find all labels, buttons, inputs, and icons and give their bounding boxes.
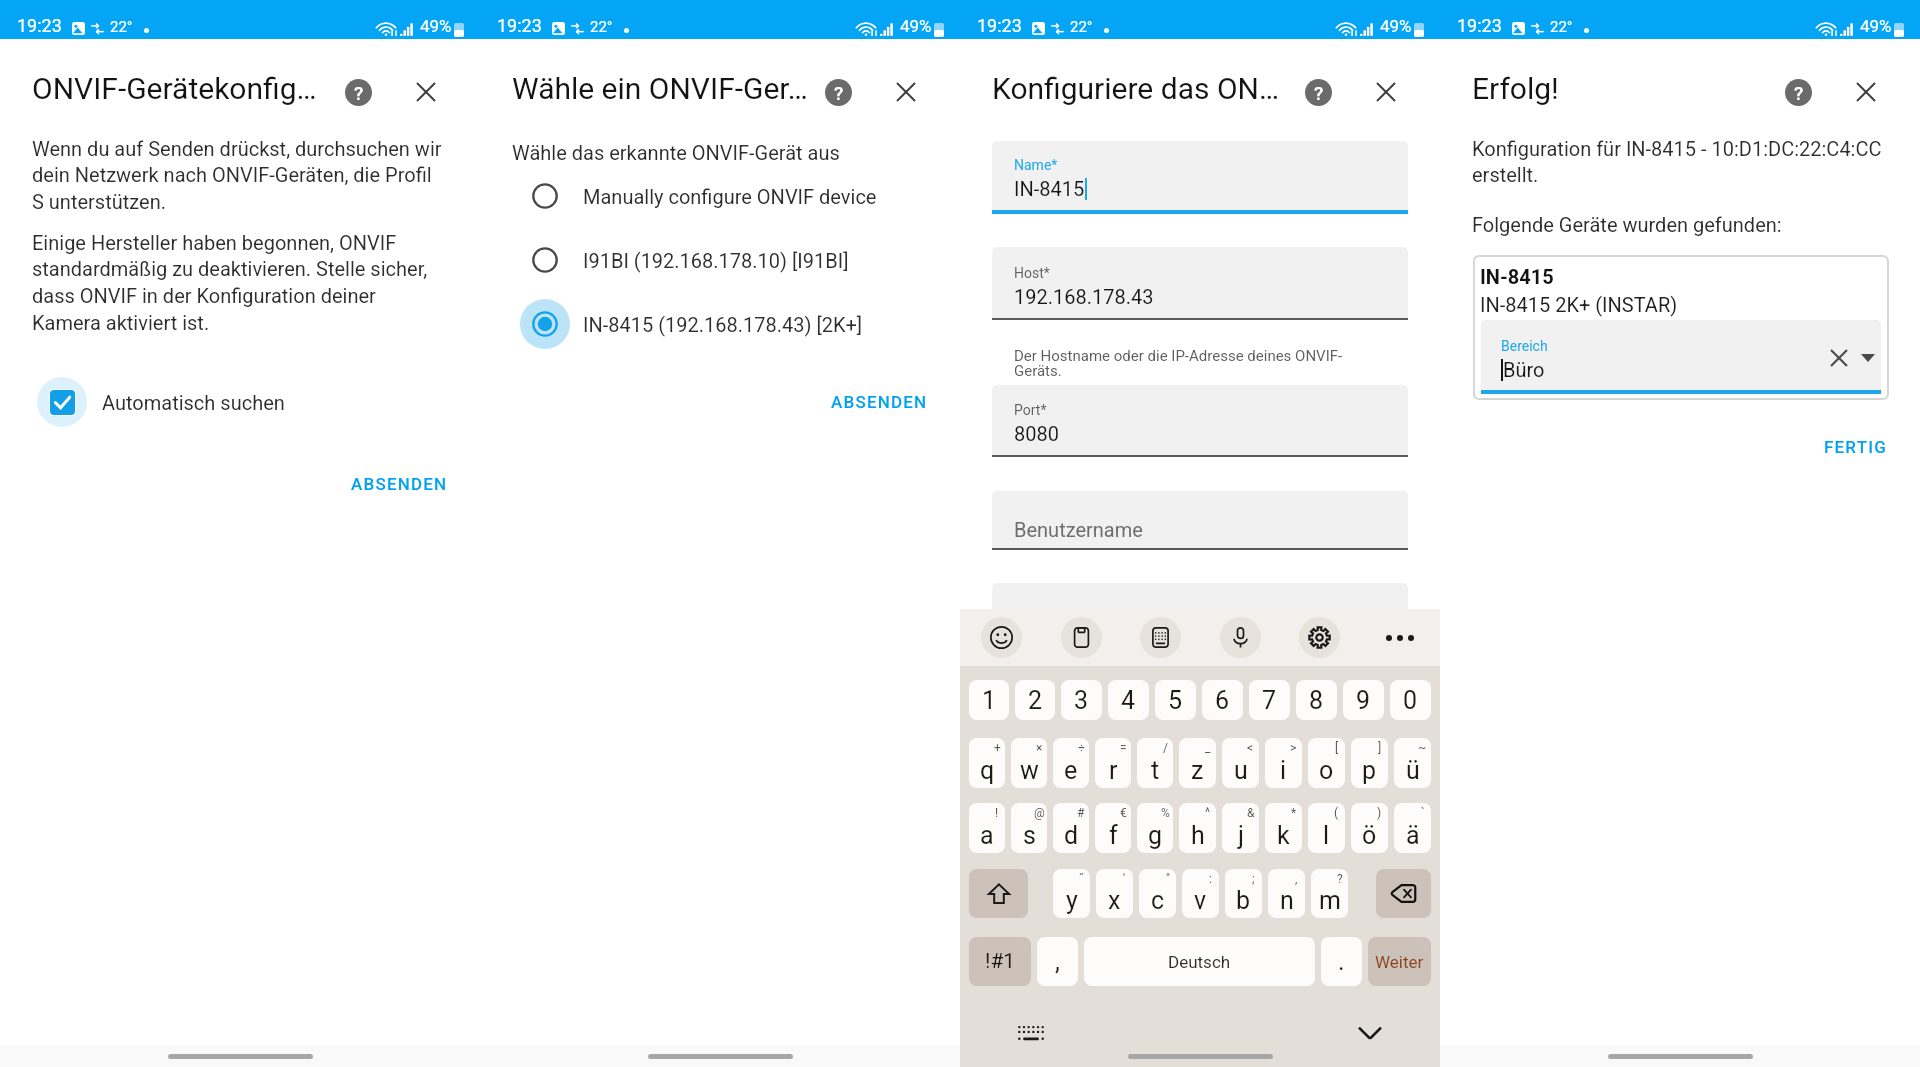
staticText: % [1161, 806, 1170, 820]
button[interactable]: * [1265, 803, 1302, 853]
staticText: 7 [1262, 686, 1277, 715]
button[interactable]: 1 [969, 680, 1009, 720]
button[interactable]: : [1182, 869, 1219, 918]
button[interactable]: Hilfe [817, 71, 859, 113]
button[interactable]: × [1011, 738, 1047, 788]
staticText: q [980, 756, 995, 785]
button[interactable]: Tastatur ausblenden [1357, 1020, 1383, 1046]
button[interactable]: 5 [1155, 680, 1196, 720]
button[interactable]: Name* [992, 141, 1408, 210]
button[interactable]: Tastatureinstellungen [1299, 617, 1340, 658]
button[interactable]: Host* [992, 247, 1408, 318]
staticText: 19:23 [497, 15, 542, 36]
button[interactable]: ( [1308, 803, 1345, 853]
button[interactable]: 4 [1108, 680, 1149, 720]
button[interactable]: ÷ [1053, 738, 1089, 788]
button[interactable]: Umschalt [969, 869, 1028, 918]
staticText: Port* [1014, 402, 1047, 418]
button[interactable]: 2 [1015, 680, 1055, 720]
button[interactable]: + [969, 738, 1005, 788]
button[interactable]: @ [1011, 803, 1047, 853]
button[interactable]: ; [1225, 869, 1262, 918]
staticText: !#1 [985, 949, 1016, 974]
button[interactable]: Emoji [981, 617, 1022, 658]
button[interactable]: Bereich [1481, 320, 1881, 390]
button[interactable]: # [1053, 803, 1089, 853]
button[interactable]: ABSENDEN [799, 382, 960, 422]
button[interactable]: ! [969, 803, 1005, 853]
staticText: 49% [1860, 16, 1892, 36]
button[interactable]: > [1265, 738, 1302, 788]
button[interactable]: ˝ [1053, 869, 1090, 918]
button[interactable]: 7 [1249, 680, 1290, 720]
button[interactable]: ` [1394, 803, 1431, 853]
button[interactable]: ) [1351, 803, 1388, 853]
button[interactable]: 8 [1296, 680, 1337, 720]
staticText: IN-8415 2K+ (INSTAR) [1480, 293, 1678, 316]
staticText: 49% [900, 16, 932, 36]
button[interactable]: IN-8415 (192.168.178.43) [2K+] [480, 292, 960, 356]
staticText: r [1109, 756, 1118, 785]
button[interactable]: Eingabe löschen [1824, 343, 1854, 373]
button[interactable]: ] [1351, 738, 1388, 788]
button[interactable]: 6 [1202, 680, 1243, 720]
button[interactable]: [ [1308, 738, 1345, 788]
button[interactable]: Hilfe [337, 71, 379, 113]
staticText: p [1362, 756, 1377, 785]
staticText: ONVIF-Gerätekonfig… [32, 71, 317, 106]
staticText: Host* [1014, 265, 1050, 281]
button[interactable]: " [1139, 869, 1176, 918]
staticText: 5 [1168, 686, 1183, 715]
button[interactable]: Löschen [1376, 869, 1431, 918]
staticText: ö [1362, 821, 1377, 850]
button[interactable]: Weiter [1368, 937, 1431, 986]
button[interactable]: I91BI (192.168.178.10) [I91BI] [480, 228, 960, 292]
staticText: 19:23 [17, 15, 62, 36]
button[interactable]: € [1095, 803, 1131, 853]
button[interactable]: Zwischenablage [1061, 617, 1102, 658]
button[interactable]: Spracheingabe [1220, 617, 1261, 658]
button[interactable]: Tastatur wechseln [1018, 1020, 1044, 1046]
button[interactable]: Schließen [405, 71, 447, 113]
button[interactable]: Schließen [1365, 71, 1407, 113]
staticText: ÷ [1078, 741, 1085, 755]
button[interactable]: Port* [992, 385, 1408, 455]
button[interactable]: Manually configure ONVIF device [480, 164, 960, 228]
staticText: ˝ [1079, 872, 1084, 886]
staticText: . [1338, 947, 1345, 976]
staticText: Bereich [1501, 338, 1548, 354]
button[interactable]: _ [1179, 738, 1216, 788]
button[interactable]: Schließen [885, 71, 927, 113]
staticText: w [1020, 756, 1039, 785]
button[interactable]: ~ [1394, 738, 1431, 788]
button[interactable]: Automatisch suchen [0, 377, 480, 427]
button[interactable]: % [1137, 803, 1173, 853]
button[interactable]: 9 [1343, 680, 1384, 720]
button[interactable]: , [1268, 869, 1305, 918]
button[interactable]: Hilfe [1297, 71, 1339, 113]
button[interactable]: !#1 [969, 937, 1031, 986]
button[interactable]: Benutzername [992, 491, 1408, 548]
button[interactable]: < [1222, 738, 1259, 788]
staticText: Weiter [1375, 952, 1424, 972]
button[interactable]: FERTIG [1792, 427, 1920, 467]
button[interactable]: , [1037, 937, 1078, 986]
staticText: e [1064, 756, 1078, 785]
button[interactable]: 3 [1061, 680, 1102, 720]
button[interactable]: Auswahlliste öffnen [1855, 345, 1881, 371]
button[interactable]: Mehr Optionen [1379, 617, 1420, 658]
button[interactable]: ' [1096, 869, 1133, 918]
button[interactable]: / [1137, 738, 1173, 788]
button[interactable]: Hilfe [1777, 71, 1819, 113]
button[interactable]: ^ [1179, 803, 1216, 853]
button[interactable]: & [1222, 803, 1259, 853]
button[interactable]: Tastaturlayout [1140, 617, 1181, 658]
button[interactable]: Deutsch [1084, 937, 1315, 986]
button[interactable]: ABSENDEN [319, 464, 480, 504]
button[interactable]: = [1095, 738, 1131, 788]
button[interactable]: ? [1311, 869, 1348, 918]
button[interactable]: . [1321, 937, 1362, 986]
button[interactable]: Schließen [1845, 71, 1887, 113]
button[interactable]: 0 [1390, 680, 1431, 720]
staticText: Der Hostname oder die IP-Adresse deines … [1014, 347, 1364, 380]
